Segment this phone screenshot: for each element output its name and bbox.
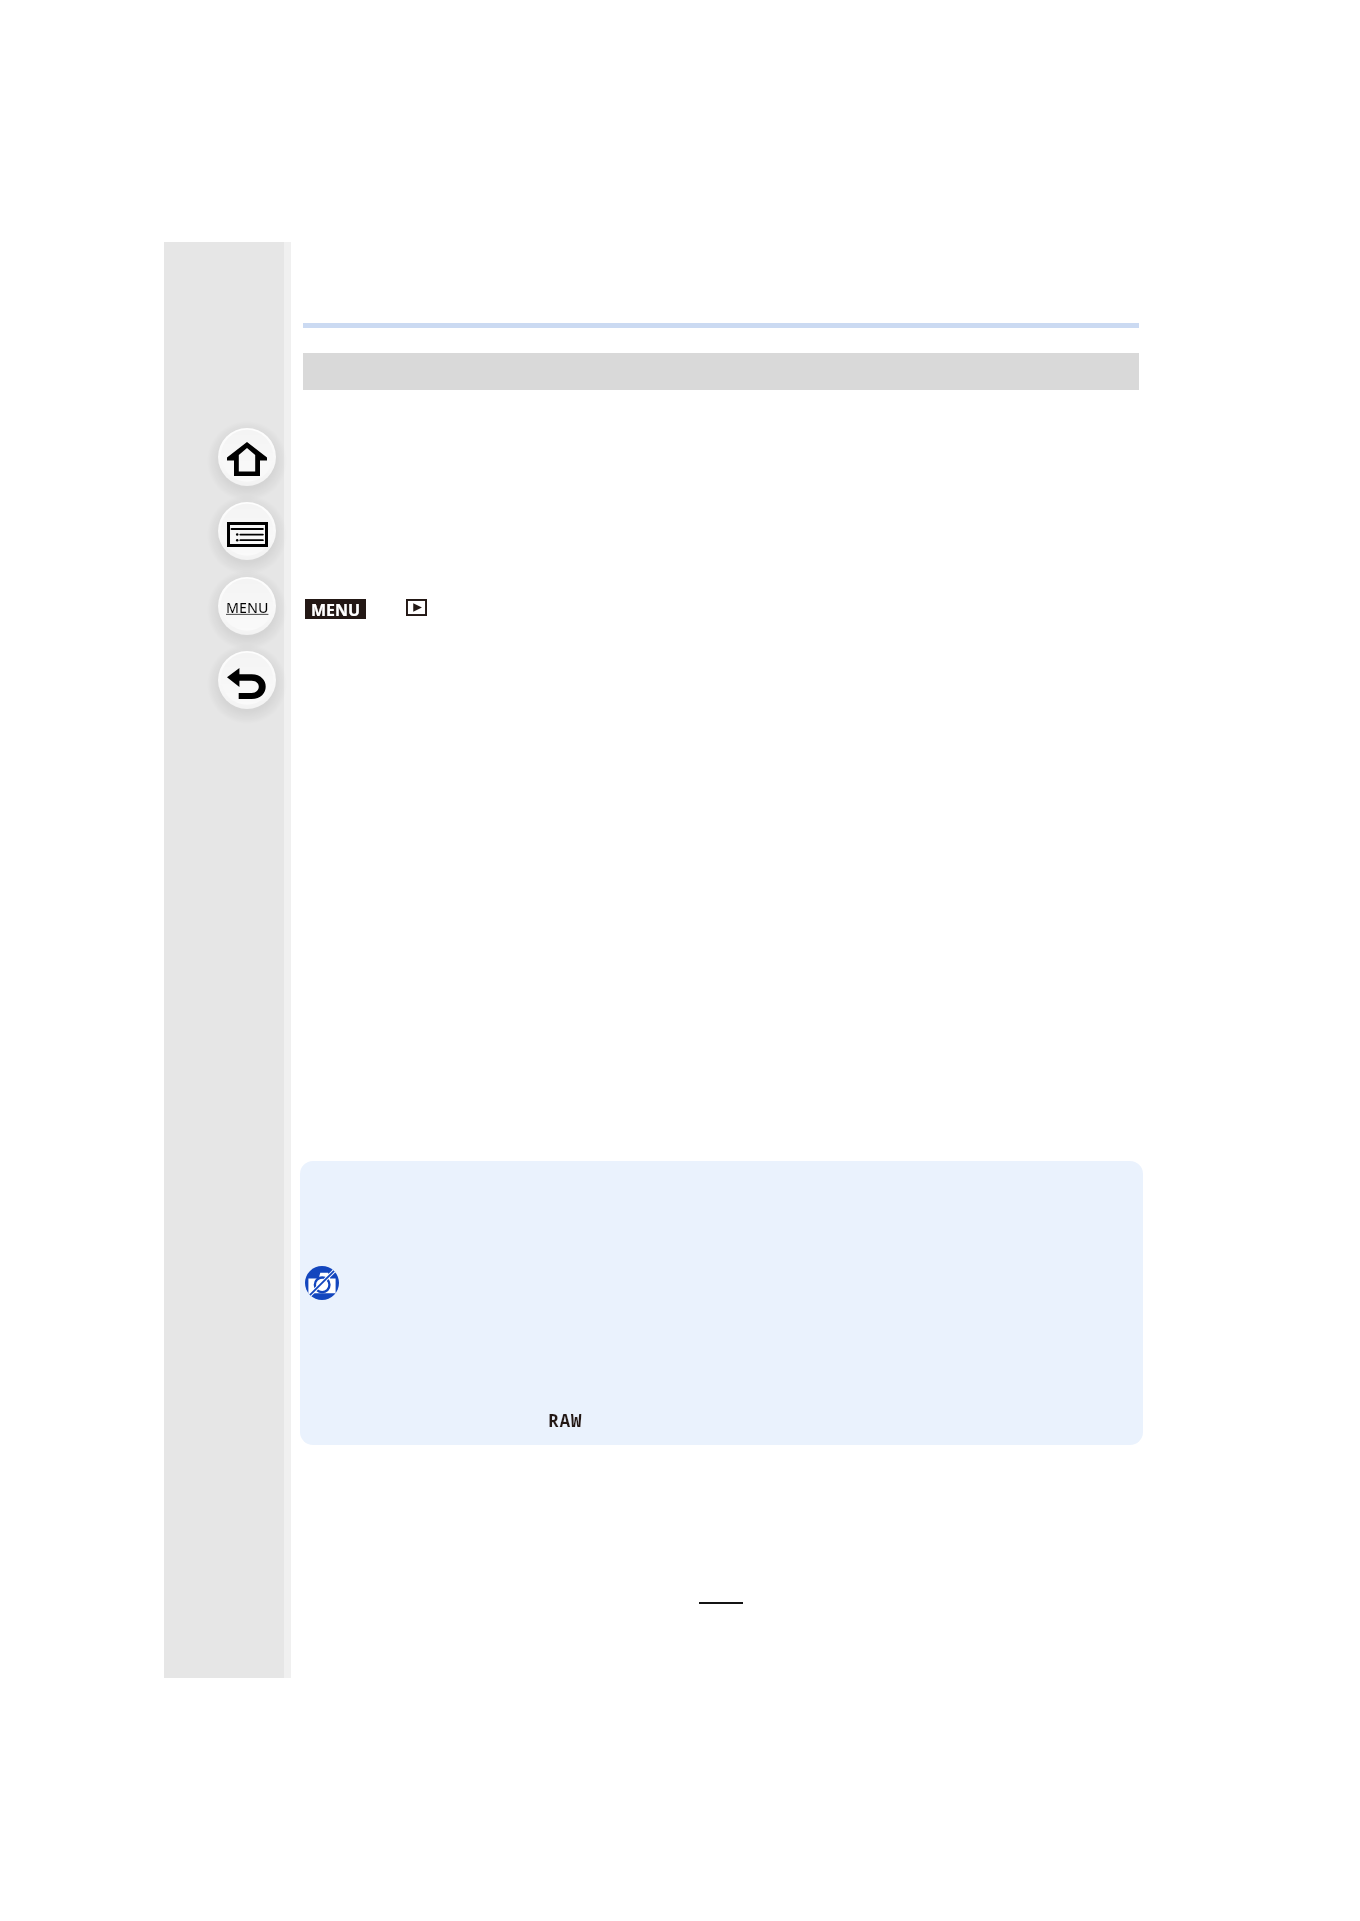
staticText: RAW (548, 1408, 583, 1433)
button[interactable]: Menu (205, 564, 289, 648)
button[interactable]: Playback (406, 599, 427, 616)
other: Not recordable (305, 1266, 339, 1300)
staticText: MENU (311, 599, 361, 619)
staticText: MENU (226, 598, 269, 617)
button[interactable]: Home (205, 415, 289, 499)
button[interactable]: Back (205, 638, 289, 722)
button[interactable]: MENU (305, 599, 366, 619)
button[interactable]: Contents (205, 489, 289, 573)
